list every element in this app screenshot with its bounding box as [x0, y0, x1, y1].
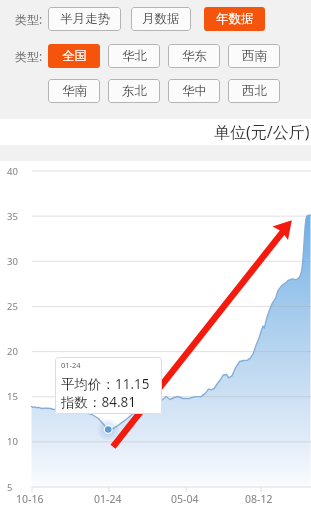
staticText: 类型:: [15, 48, 43, 64]
staticText: 20: [7, 345, 18, 358]
staticText: 35: [7, 210, 18, 223]
staticText: 华北: [122, 48, 147, 64]
staticText: 15: [7, 390, 18, 403]
staticText: 华中: [182, 83, 207, 99]
staticText: 月数据: [142, 11, 180, 27]
staticText: 东北: [122, 83, 147, 99]
staticText: 平均价：11.15: [61, 375, 150, 393]
button[interactable]: 全国: [48, 44, 100, 68]
button[interactable]: 月数据: [131, 7, 191, 31]
staticText: 指数：84.81: [61, 393, 137, 411]
staticText: 年数据: [216, 11, 254, 27]
staticText: 40: [7, 165, 18, 178]
staticText: 西北: [242, 83, 267, 99]
staticText: 08-12: [245, 492, 273, 506]
staticText: 华东: [182, 48, 207, 64]
staticText: 01-24: [94, 492, 122, 506]
button[interactable]: 华南: [48, 79, 100, 103]
staticText: 全国: [62, 48, 87, 64]
staticText: 华南: [62, 83, 87, 99]
button[interactable]: 半月走势: [48, 7, 121, 31]
staticText: 类型:: [15, 11, 43, 27]
staticText: 单位(元/公斤): [214, 121, 310, 143]
staticText: 西南: [242, 48, 267, 64]
staticText: 10-16: [16, 492, 44, 506]
staticText: 5: [7, 481, 13, 494]
button[interactable]: 西北: [228, 79, 280, 103]
button[interactable]: 西南: [228, 44, 280, 68]
staticText: 30: [7, 255, 18, 268]
staticText: 半月走势: [60, 11, 110, 27]
button[interactable]: 年数据: [204, 7, 265, 31]
staticText: 10: [7, 435, 18, 448]
staticText: 25: [7, 300, 18, 313]
button[interactable]: 东北: [108, 79, 160, 103]
button[interactable]: 华东: [168, 44, 220, 68]
button[interactable]: 华北: [108, 44, 160, 68]
button[interactable]: 华中: [168, 79, 220, 103]
staticText: 01-24: [61, 360, 81, 370]
staticText: 05-04: [171, 492, 199, 506]
